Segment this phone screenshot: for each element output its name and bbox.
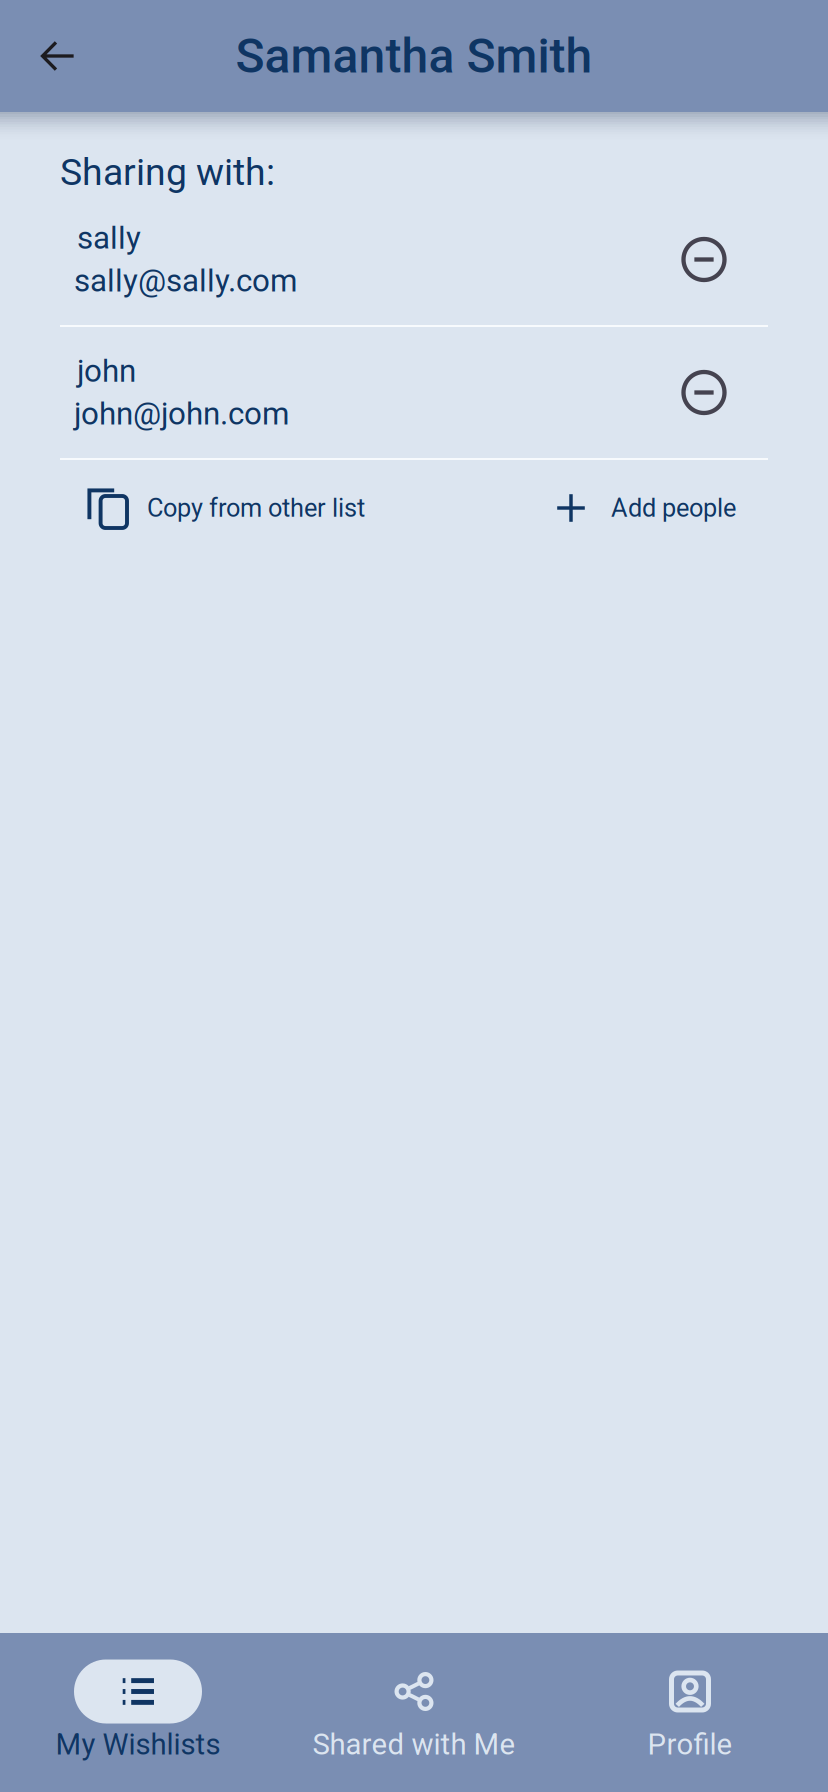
staticText: sally@sally.com (74, 262, 297, 299)
button[interactable]: My Wishlists (0, 1633, 276, 1792)
staticText: sally (77, 220, 141, 256)
staticText: john (77, 353, 136, 389)
staticText: john@john.com (74, 395, 289, 432)
button[interactable]: Profile (552, 1633, 828, 1792)
button[interactable]: Add people (556, 460, 736, 556)
staticText: Sharing with: (60, 150, 275, 194)
button[interactable]: Back (22, 20, 94, 92)
button[interactable]: Shared with Me (276, 1633, 552, 1792)
staticText: Shared with Me (312, 1727, 515, 1762)
staticText: Profile (647, 1727, 732, 1762)
staticText: Samantha Smith (235, 28, 592, 84)
button[interactable]: Remove john (660, 327, 748, 458)
staticText: Add people (611, 493, 736, 523)
button[interactable]: Remove sally (660, 194, 748, 325)
button[interactable]: Copy from other list (87, 460, 365, 556)
staticText: Copy from other list (147, 493, 365, 523)
staticText: My Wishlists (55, 1727, 220, 1762)
